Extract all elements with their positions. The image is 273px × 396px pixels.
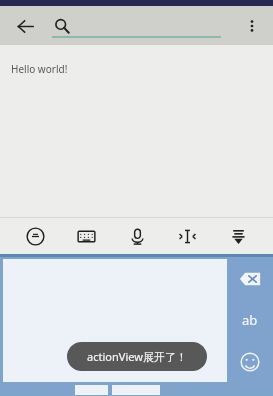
button[interactable]: Move cursor [171,220,203,252]
staticText: actionView展开了！ [87,349,187,364]
button[interactable]: Voice input [121,220,153,252]
staticText: Hello world! [11,62,68,76]
button[interactable]: Emoji [229,342,271,382]
staticText: ab [242,311,258,329]
button[interactable]: Back [8,9,42,43]
button[interactable]: Hide keyboard [222,220,254,252]
button[interactable]: Delete [229,259,271,298]
button[interactable]: ab [229,300,271,340]
button[interactable]: Emoji [19,220,51,252]
button[interactable]: Search [52,6,221,45]
button[interactable] [3,259,227,382]
button[interactable]: More options [235,9,269,43]
button[interactable]: Keyboard [70,220,102,252]
